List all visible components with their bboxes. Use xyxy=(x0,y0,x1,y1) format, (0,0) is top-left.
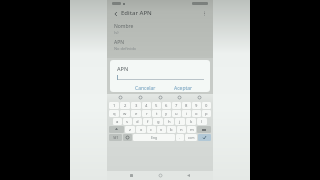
button[interactable]: Keyboard tool 3 xyxy=(158,95,163,100)
button[interactable]: 7 xyxy=(172,102,181,109)
button[interactable]: l xyxy=(197,118,207,125)
staticText: 5 xyxy=(155,103,158,109)
staticText: r xyxy=(146,111,148,117)
button[interactable]: Keyboard tool 5 xyxy=(197,95,202,100)
button[interactable]: . xyxy=(176,134,184,141)
button[interactable]: p xyxy=(202,110,211,117)
staticText: 4 xyxy=(145,103,148,109)
button[interactable]: r xyxy=(142,110,151,117)
staticText: Eng xyxy=(151,135,158,140)
button[interactable]: 6 xyxy=(162,102,171,109)
staticText: k xyxy=(190,119,193,125)
button[interactable]: c xyxy=(147,126,156,133)
staticText: No definido xyxy=(114,46,137,51)
staticText: . xyxy=(179,135,181,140)
button[interactable]: q xyxy=(109,110,119,117)
button[interactable]: Emoji xyxy=(123,134,132,141)
button[interactable]: 8 xyxy=(182,102,191,109)
staticText: d xyxy=(136,119,139,125)
button[interactable]: 2 xyxy=(120,102,130,109)
staticText: 0 xyxy=(205,103,208,109)
staticText: o xyxy=(195,111,198,117)
button[interactable]: Backspace xyxy=(197,126,211,133)
button[interactable]: Recents xyxy=(127,171,136,180)
staticText: s xyxy=(126,119,129,125)
button[interactable]: 1 xyxy=(109,102,119,109)
button[interactable]: 9 xyxy=(192,102,201,109)
button[interactable]: w xyxy=(120,110,130,117)
button[interactable]: m xyxy=(187,126,196,133)
button[interactable]: b xyxy=(167,126,176,133)
button[interactable]: j xyxy=(175,118,185,125)
button[interactable]: z xyxy=(125,126,135,133)
staticText: Editar APN xyxy=(121,9,152,17)
staticText: 1 xyxy=(113,103,116,109)
button[interactable]: Aceptar xyxy=(172,84,195,92)
staticText: w xyxy=(123,111,127,117)
button[interactable]: Shift xyxy=(109,126,124,133)
button[interactable]: Keyboard tool 1 xyxy=(118,95,123,100)
button[interactable]: y xyxy=(162,110,171,117)
staticText: APN xyxy=(114,39,125,46)
staticText: 2 xyxy=(124,103,127,109)
staticText: u xyxy=(175,111,178,117)
button[interactable]: Cancelar xyxy=(133,84,158,92)
button[interactable]: i xyxy=(182,110,191,117)
button[interactable]: More options xyxy=(200,9,209,18)
staticText: com xyxy=(188,136,195,140)
staticText: b xyxy=(170,127,173,133)
staticText: t xyxy=(156,111,158,117)
button[interactable]: s xyxy=(123,118,132,125)
staticText: z xyxy=(129,127,131,133)
button[interactable]: g xyxy=(153,118,163,125)
staticText: y xyxy=(165,111,168,117)
staticText: x xyxy=(140,127,143,133)
staticText: Aceptar xyxy=(174,85,193,91)
staticText: a xyxy=(116,119,119,125)
staticText: (v) xyxy=(114,30,119,35)
staticText: g xyxy=(157,119,160,125)
button[interactable]: Back xyxy=(184,171,193,180)
button[interactable]: 3 xyxy=(131,102,141,109)
staticText: 9 xyxy=(195,103,198,109)
button[interactable]: Nombre xyxy=(107,21,213,37)
button[interactable]: !#1 xyxy=(109,134,122,141)
staticText: Cancelar xyxy=(135,85,156,91)
button[interactable]: d xyxy=(133,118,142,125)
button[interactable]: Home xyxy=(156,171,165,180)
button[interactable]: o xyxy=(192,110,201,117)
staticText: m xyxy=(190,127,194,133)
staticText: 8 xyxy=(185,103,188,109)
staticText: v xyxy=(160,127,163,133)
button[interactable]: 4 xyxy=(142,102,151,109)
staticText: l xyxy=(201,119,203,125)
button[interactable]: h xyxy=(164,118,174,125)
button[interactable]: Space xyxy=(133,134,175,141)
staticText: j xyxy=(179,119,181,125)
button[interactable]: Done xyxy=(198,134,211,141)
button[interactable]: Keyboard tool 2 xyxy=(138,95,143,100)
button[interactable]: Back xyxy=(111,9,120,18)
button[interactable]: u xyxy=(172,110,181,117)
staticText: n xyxy=(180,127,183,133)
button[interactable]: n xyxy=(177,126,186,133)
button[interactable]: v xyxy=(157,126,166,133)
button[interactable]: Keyboard tool 4 xyxy=(177,95,182,100)
staticText: 3 xyxy=(135,103,138,109)
button[interactable]: 0 xyxy=(202,102,211,109)
button[interactable]: f xyxy=(143,118,152,125)
button[interactable]: k xyxy=(186,118,196,125)
staticText: Nombre xyxy=(114,23,134,30)
staticText: e xyxy=(135,111,138,117)
button[interactable]: com xyxy=(185,134,197,141)
button[interactable]: e xyxy=(131,110,141,117)
button[interactable]: 5 xyxy=(152,102,161,109)
staticText: !#1 xyxy=(113,135,119,140)
button[interactable]: a xyxy=(113,118,122,125)
button[interactable]: APN xyxy=(107,37,213,53)
button[interactable]: t xyxy=(152,110,161,117)
button[interactable]: x xyxy=(136,126,146,133)
staticText: 7 xyxy=(175,103,178,109)
